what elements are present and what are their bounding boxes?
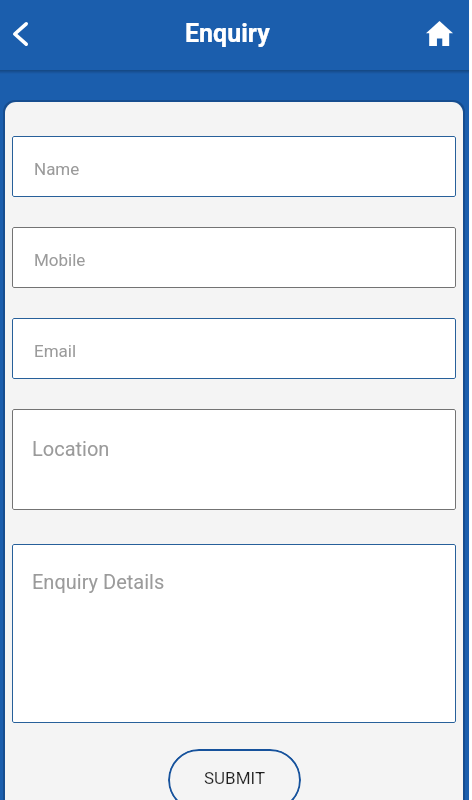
staticText: Mobile (34, 250, 86, 270)
button[interactable]: Enquiry Details (12, 544, 456, 723)
button[interactable]: Mobile (12, 227, 456, 288)
button[interactable]: Home (417, 13, 461, 57)
staticText: Enquiry Details (32, 570, 165, 593)
staticText: SUBMIT (204, 768, 266, 788)
button[interactable]: Back (0, 13, 44, 57)
staticText: Enquiry (185, 19, 270, 48)
button[interactable]: SUBMIT (168, 749, 301, 800)
button[interactable]: Location (12, 409, 456, 510)
staticText: Location (32, 437, 110, 460)
button[interactable]: Name (12, 136, 456, 197)
button[interactable]: Email (12, 318, 456, 379)
staticText: Name (34, 159, 80, 179)
staticText: Email (34, 341, 77, 361)
